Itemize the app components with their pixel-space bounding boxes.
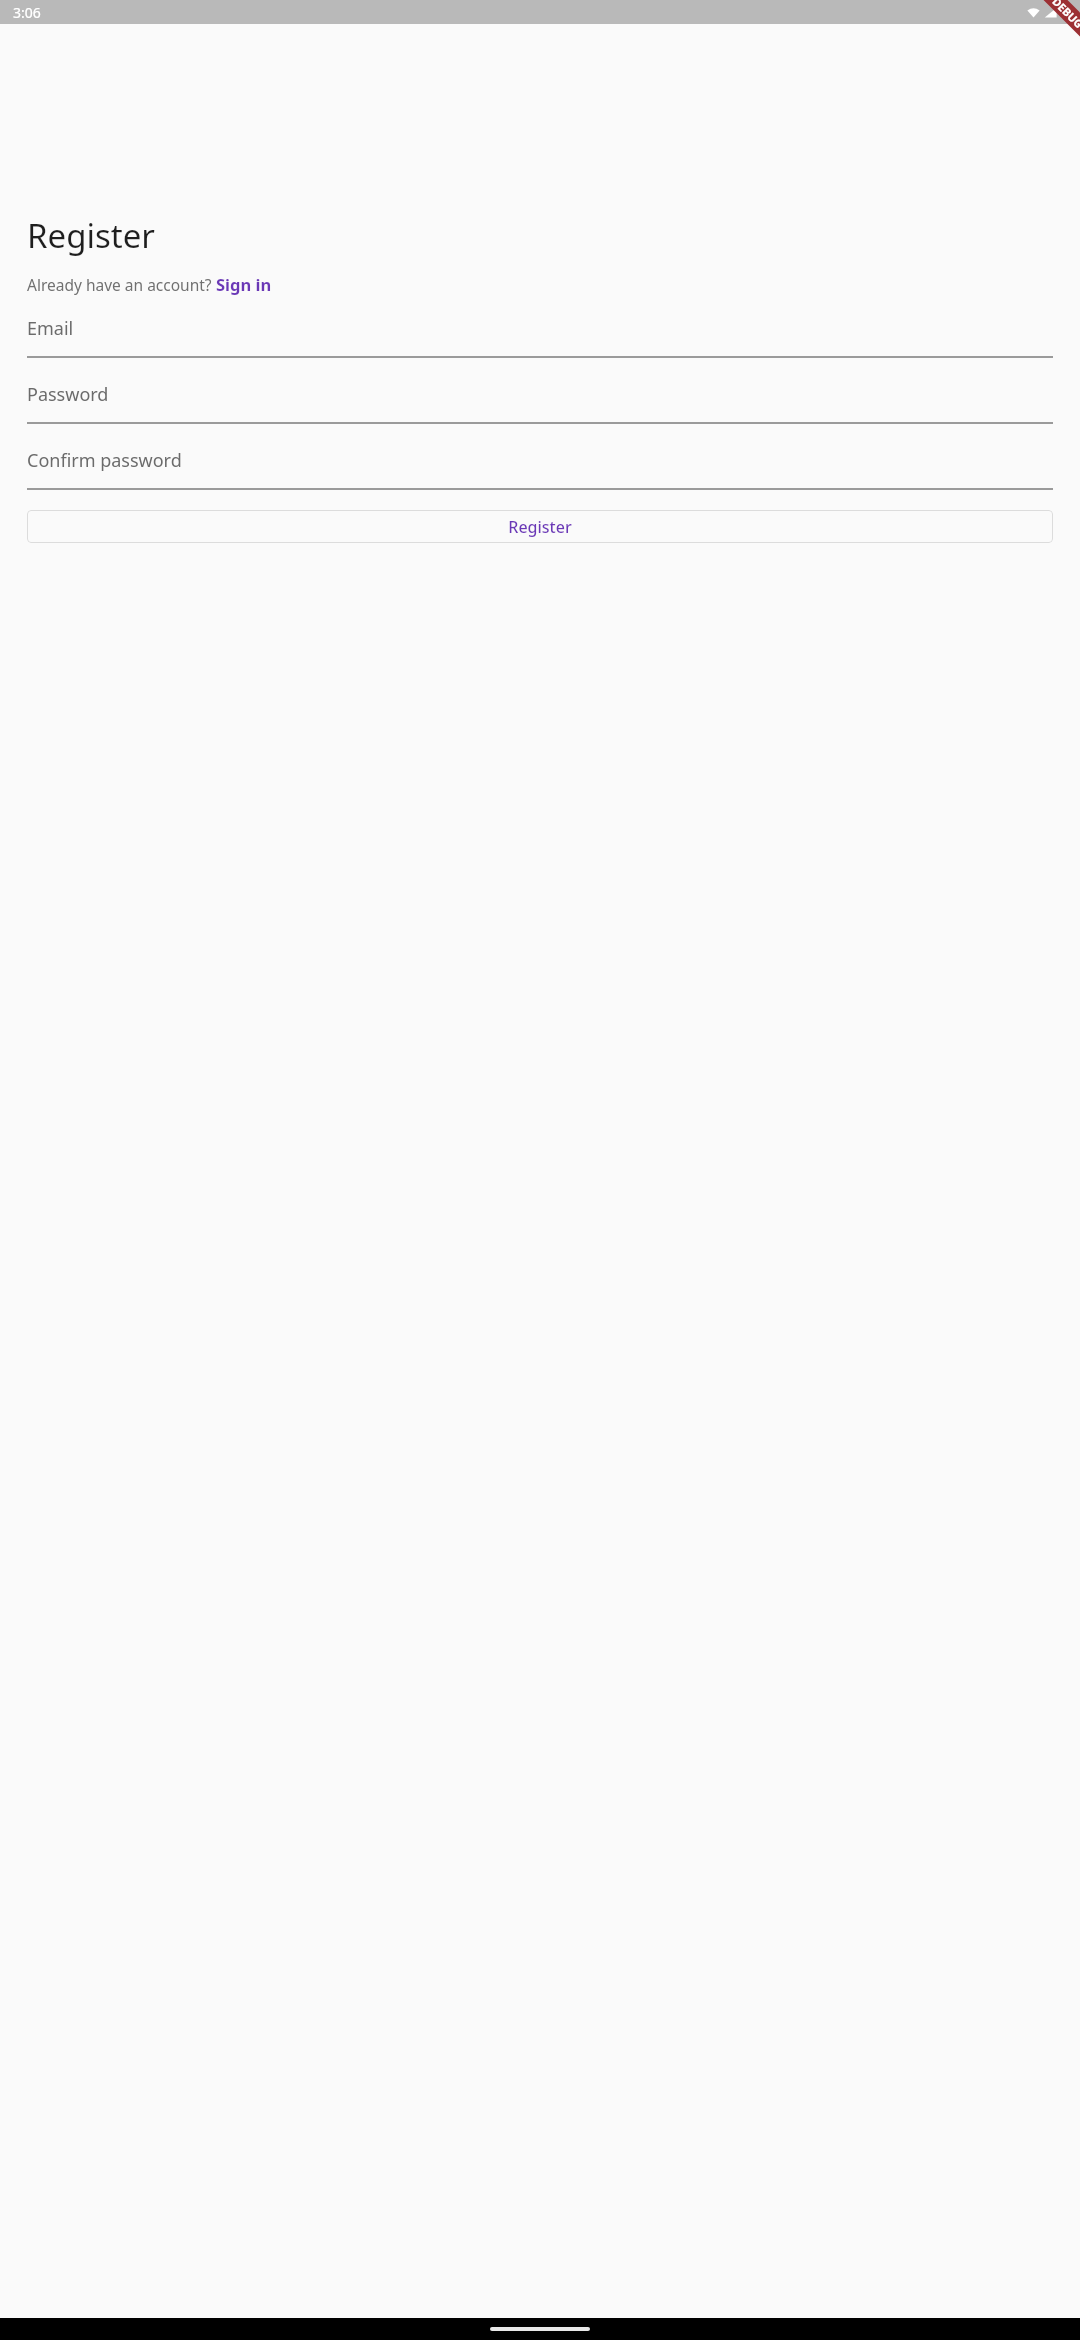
staticText: Already have an account? — [27, 274, 216, 295]
other: Cellular signal — [1044, 6, 1057, 19]
staticText: Password — [27, 382, 109, 407]
staticText: Register — [27, 213, 155, 258]
staticText: Sign in — [216, 273, 272, 295]
other: Wi-Fi — [1027, 6, 1040, 19]
button[interactable]: Email — [27, 316, 1053, 358]
button[interactable]: Register — [27, 510, 1053, 543]
staticText: Email — [27, 316, 74, 341]
staticText: Register — [508, 516, 572, 538]
other: Battery — [1061, 5, 1069, 19]
button[interactable]: Confirm password — [27, 448, 1053, 490]
staticText: 3:06 — [13, 3, 41, 22]
staticText: Confirm password — [27, 448, 182, 473]
button[interactable]: Password — [27, 382, 1053, 424]
button[interactable]: Sign in — [216, 273, 272, 295]
staticText: DEBUG — [1049, 0, 1080, 31]
